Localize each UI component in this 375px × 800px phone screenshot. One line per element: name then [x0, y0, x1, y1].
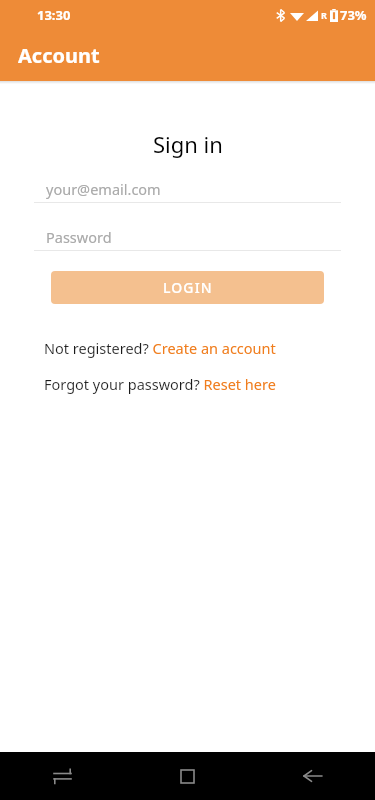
staticText: 73%: [340, 6, 367, 24]
staticText: your@email.com: [46, 179, 161, 199]
staticText: Sign in: [153, 129, 223, 159]
staticText: Account: [18, 42, 100, 69]
button[interactable]: Forgot your password? Reset here: [44, 374, 331, 394]
button[interactable]: Home: [125, 752, 250, 800]
staticText: Forgot your password? Reset here: [44, 374, 276, 394]
button[interactable]: Password: [34, 224, 341, 251]
button[interactable]: Recent apps: [0, 752, 125, 800]
button[interactable]: LOGIN: [51, 271, 324, 304]
button[interactable]: Back: [250, 752, 375, 800]
button[interactable]: Not registered? Create an account: [44, 338, 331, 358]
button[interactable]: your@email.com: [34, 176, 341, 203]
staticText: Not registered? Create an account: [44, 338, 276, 358]
staticText: 13:30: [37, 6, 71, 24]
staticText: LOGIN: [163, 278, 213, 297]
staticText: Password: [46, 227, 112, 247]
staticText: R: [321, 9, 327, 21]
